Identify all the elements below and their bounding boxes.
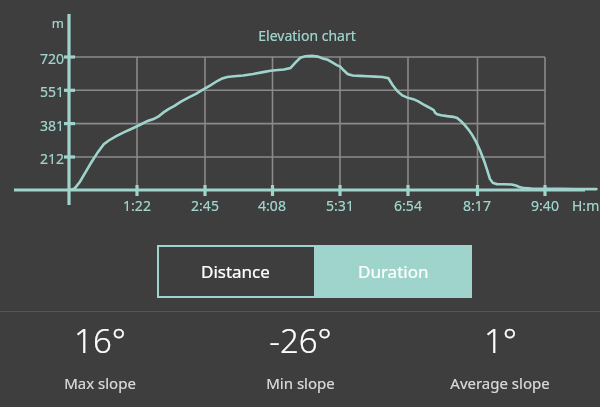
staticText: 16° (74, 318, 126, 363)
staticText: 720 (14, 49, 64, 68)
button[interactable]: Duration (314, 245, 472, 298)
button[interactable]: 1° (400, 318, 600, 393)
staticText: Distance (201, 260, 270, 283)
staticText: 8:17 (452, 196, 502, 215)
staticText: Min slope (266, 373, 335, 393)
button[interactable]: Distance (157, 245, 314, 298)
staticText: 4:08 (247, 196, 297, 215)
staticText: 1:22 (112, 196, 162, 215)
staticText: Elevation chart (232, 26, 382, 45)
staticText: 9:40 (520, 196, 570, 215)
staticText: Duration (358, 260, 429, 283)
staticText: Average slope (450, 373, 550, 393)
staticText: -26° (269, 318, 332, 363)
staticText: 6:54 (383, 196, 433, 215)
staticText: H:m (572, 196, 600, 215)
button[interactable]: -26° (200, 318, 400, 393)
staticText: m (22, 14, 64, 32)
staticText: 381 (14, 116, 64, 135)
staticText: 551 (14, 82, 64, 101)
staticText: 212 (14, 149, 64, 168)
staticText: 5:31 (315, 196, 365, 215)
staticText: 2:45 (180, 196, 230, 215)
staticText: Max slope (64, 373, 136, 393)
staticText: 1° (484, 318, 517, 363)
button[interactable]: 16° (0, 318, 200, 393)
